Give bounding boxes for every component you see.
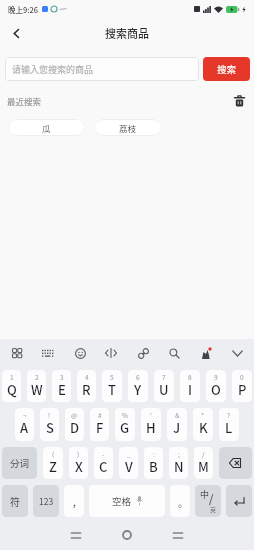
staticText: *	[201, 410, 205, 419]
staticText: 2	[35, 372, 39, 381]
button[interactable]: _	[119, 447, 138, 479]
button[interactable]: 分词	[2, 447, 37, 479]
staticText: 最近搜索	[7, 95, 42, 107]
staticText: W	[31, 380, 43, 399]
button[interactable]: ，	[64, 485, 84, 517]
button[interactable]: 符	[2, 485, 28, 517]
staticText: X	[75, 457, 83, 476]
staticText: L	[225, 418, 233, 437]
staticText: 。	[178, 495, 188, 509]
button[interactable]: -	[94, 447, 113, 479]
staticText: (	[52, 449, 55, 458]
staticText: G	[120, 418, 130, 437]
staticText: )	[77, 449, 80, 458]
staticText: 请输入您搜索的商品	[12, 63, 94, 76]
staticText: -	[102, 449, 105, 458]
button[interactable]	[131, 341, 155, 365]
button[interactable]: !	[40, 408, 59, 441]
button[interactable]	[194, 341, 218, 365]
staticText: V	[125, 457, 133, 476]
staticText: Z	[49, 457, 57, 476]
button[interactable]: '	[141, 408, 161, 441]
button[interactable]	[6, 23, 26, 43]
staticText: 晚上9:26	[8, 4, 39, 15]
button[interactable]: *	[193, 408, 213, 441]
button[interactable]	[219, 447, 252, 479]
button[interactable]: 。	[170, 485, 190, 517]
button[interactable]: 3	[52, 370, 71, 402]
button[interactable]	[118, 526, 136, 544]
button[interactable]	[225, 341, 249, 365]
staticText: 7	[162, 372, 166, 381]
button[interactable]: 1	[2, 370, 21, 402]
button[interactable]: #	[90, 408, 109, 441]
staticText: A	[20, 418, 29, 437]
button[interactable]: 5	[102, 370, 122, 402]
staticText: /	[202, 449, 205, 458]
staticText: 5	[110, 372, 114, 381]
staticText: M	[198, 457, 209, 476]
button[interactable]: 搜索	[203, 57, 250, 81]
staticText: K	[199, 418, 208, 437]
button[interactable]: (	[43, 447, 63, 479]
staticText: 荔枝	[119, 122, 137, 134]
button[interactable]	[67, 526, 85, 544]
button[interactable]: &	[167, 408, 187, 441]
button[interactable]: 9	[206, 370, 226, 402]
staticText: F	[96, 418, 104, 437]
button[interactable]: 瓜	[8, 119, 85, 136]
button[interactable]	[68, 341, 92, 365]
staticText: 搜索	[217, 62, 237, 76]
button[interactable]: %	[115, 408, 135, 441]
button[interactable]	[231, 93, 247, 109]
staticText: R	[82, 380, 91, 399]
staticText: Y	[134, 380, 142, 399]
button[interactable]: 4	[77, 370, 96, 402]
button[interactable]: /	[194, 447, 213, 479]
staticText: 0	[240, 372, 244, 381]
staticText: :	[153, 449, 155, 458]
button[interactable]: )	[69, 447, 88, 479]
staticText: Q	[7, 380, 17, 399]
button[interactable]: 空格	[89, 485, 165, 517]
staticText: 空格	[112, 494, 132, 508]
staticText: !	[48, 410, 51, 419]
button[interactable]: 中	[195, 485, 221, 517]
staticText: %	[122, 410, 128, 419]
button[interactable]: 请输入您搜索的商品	[5, 57, 199, 81]
staticText: 8	[188, 372, 192, 381]
staticText: 9	[214, 372, 218, 381]
staticText: 4	[85, 372, 89, 381]
button[interactable]: 2	[27, 370, 46, 402]
staticText: S	[46, 418, 54, 437]
button[interactable]	[162, 341, 186, 365]
staticText: ?	[227, 410, 231, 419]
button[interactable]	[99, 341, 123, 365]
button[interactable]	[169, 526, 187, 544]
button[interactable]: 123	[33, 485, 59, 517]
button[interactable]	[5, 341, 29, 365]
staticText: O	[211, 380, 221, 399]
button[interactable]: 7	[154, 370, 174, 402]
button[interactable]	[226, 485, 252, 517]
staticText: I	[188, 380, 193, 399]
button[interactable]: @	[65, 408, 84, 441]
staticText: 1	[10, 372, 14, 381]
button[interactable]: 0	[232, 370, 252, 402]
button[interactable]: 6	[128, 370, 148, 402]
button[interactable]	[36, 341, 60, 365]
button[interactable]: ?	[219, 408, 239, 441]
staticText: D	[70, 418, 80, 437]
staticText: H	[146, 418, 156, 437]
staticText: 符	[10, 494, 20, 508]
button[interactable]: ;	[169, 447, 188, 479]
button[interactable]: 8	[180, 370, 200, 402]
button[interactable]: :	[144, 447, 163, 479]
staticText: J	[173, 418, 181, 437]
staticText: ;	[178, 449, 180, 458]
staticText: U	[159, 380, 169, 399]
button[interactable]: 荔枝	[94, 119, 162, 136]
button[interactable]: ~	[15, 408, 34, 441]
staticText: 123	[39, 495, 54, 507]
staticText: ，	[72, 495, 82, 509]
